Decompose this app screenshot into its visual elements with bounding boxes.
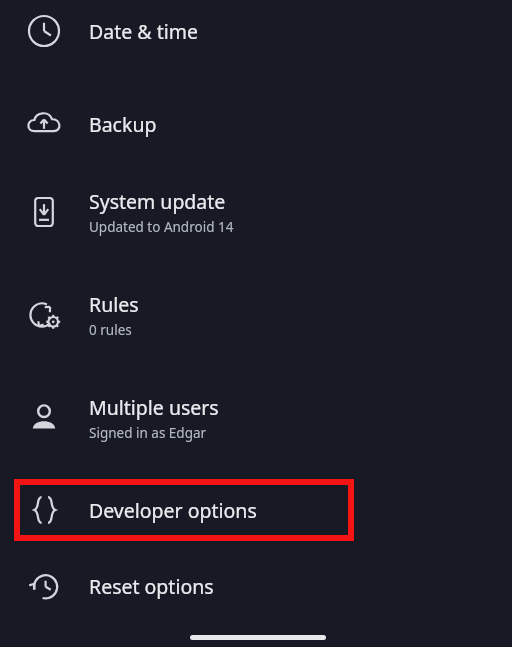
staticText: Reset options <box>89 573 214 600</box>
button[interactable]: Multiple users <box>0 387 512 449</box>
staticText: Updated to Android 14 <box>89 218 234 236</box>
button[interactable]: Backup <box>0 93 512 155</box>
button[interactable]: System update <box>0 181 512 243</box>
staticText: Date & time <box>89 18 198 45</box>
staticText: Multiple users <box>89 394 219 421</box>
button[interactable]: Date & time <box>0 0 512 62</box>
staticText: Backup <box>89 111 157 138</box>
button[interactable]: Reset options <box>0 555 512 617</box>
button[interactable]: Developer options <box>0 479 512 541</box>
staticText: System update <box>89 188 226 215</box>
staticText: Developer options <box>89 497 257 524</box>
button[interactable]: Rules <box>0 284 512 346</box>
staticText: Signed in as Edgar <box>89 424 207 442</box>
staticText: Rules <box>89 291 139 318</box>
staticText: 0 rules <box>89 321 132 339</box>
